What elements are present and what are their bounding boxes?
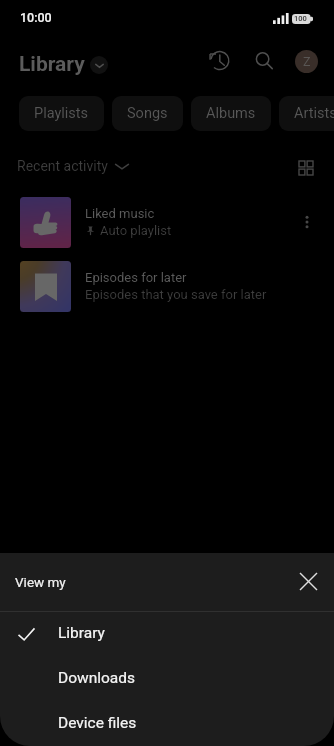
button[interactable]: Device files xyxy=(0,702,334,746)
staticText: 100 xyxy=(294,14,307,23)
staticText: Device files xyxy=(58,714,137,732)
staticText: Songs xyxy=(127,105,168,122)
button[interactable]: Change library view xyxy=(90,56,108,74)
staticText: Recent activity xyxy=(17,158,108,174)
button[interactable]: Recent activity xyxy=(13,155,134,177)
button[interactable]: History xyxy=(203,44,235,76)
button[interactable]: Songs xyxy=(112,96,183,131)
button[interactable]: Albums xyxy=(191,96,271,131)
staticText: Auto playlist xyxy=(100,223,172,238)
button[interactable]: Library xyxy=(0,612,334,657)
button[interactable]: Episodes for later xyxy=(0,254,334,318)
staticText: Downloads xyxy=(58,669,136,687)
button[interactable]: Grid view xyxy=(292,154,320,182)
staticText: Liked music xyxy=(85,206,155,221)
button[interactable]: Account xyxy=(295,50,318,73)
staticText: Episodes for later xyxy=(85,270,187,285)
button[interactable]: Liked music xyxy=(0,190,334,254)
button[interactable]: More options xyxy=(292,207,322,237)
button[interactable]: Downloads xyxy=(0,657,334,702)
staticText: 10:00 xyxy=(20,10,52,25)
staticText: View my xyxy=(15,574,66,590)
staticText: Artists xyxy=(294,105,334,122)
staticText: Episodes that you save for later xyxy=(85,287,267,302)
staticText: Albums xyxy=(206,105,256,122)
button[interactable]: Search xyxy=(248,45,280,77)
button[interactable]: Close xyxy=(293,566,323,596)
staticText: Library xyxy=(58,624,105,642)
button[interactable]: Playlists xyxy=(19,96,104,131)
staticText: Library xyxy=(19,52,85,77)
staticText: Playlists xyxy=(34,105,89,122)
button[interactable]: Artists xyxy=(279,96,334,131)
staticText: Z xyxy=(303,54,311,69)
